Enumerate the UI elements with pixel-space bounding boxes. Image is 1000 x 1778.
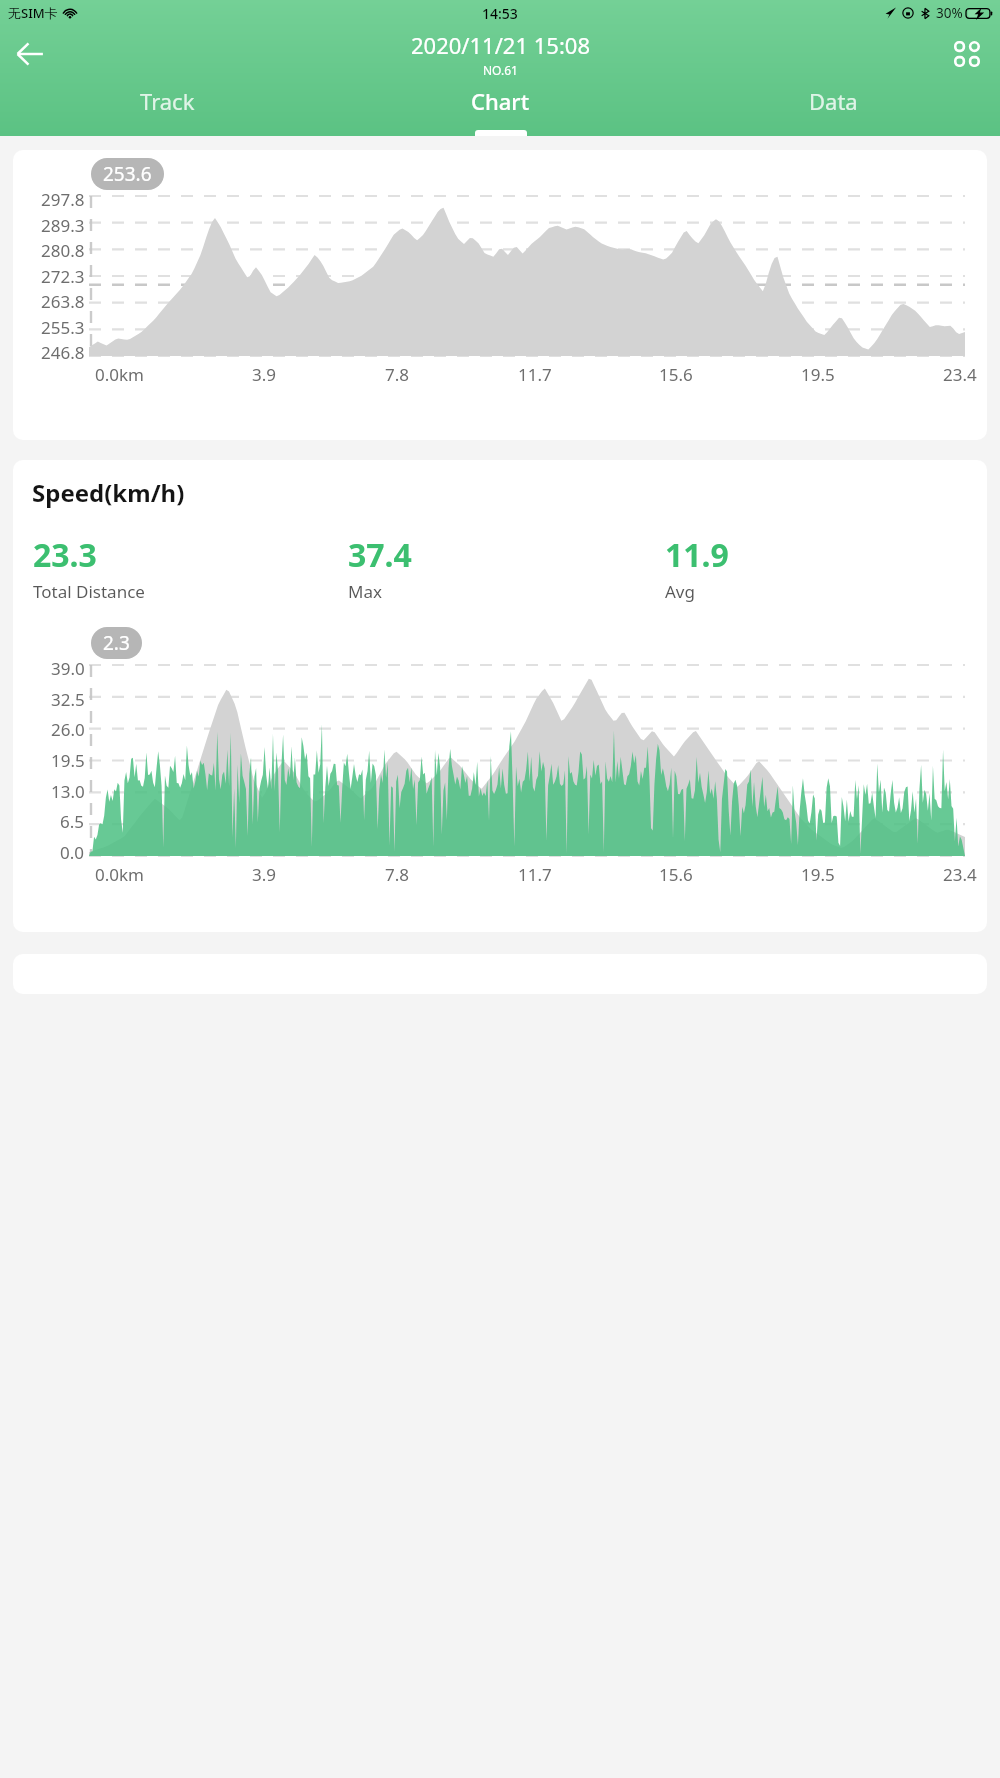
staticText: 289.3 — [41, 214, 85, 237]
staticText: 11.7 — [518, 363, 552, 386]
button[interactable]: Track — [0, 82, 334, 136]
staticText: Chart — [471, 86, 530, 116]
staticText: 11.9 — [665, 533, 729, 577]
staticText: 0.0 — [60, 841, 85, 864]
staticText: 0.0km — [95, 863, 144, 886]
button[interactable]: Grid view — [946, 33, 988, 75]
staticText: 7.8 — [385, 363, 410, 386]
staticText: Total Distance — [33, 580, 145, 603]
staticText: Track — [140, 86, 195, 116]
button[interactable]: Back — [8, 32, 52, 76]
staticText: Max — [348, 580, 382, 603]
staticText: 280.8 — [41, 239, 85, 262]
staticText: 37.4 — [348, 533, 412, 577]
staticText: 23.3 — [33, 533, 97, 577]
staticText: 3.9 — [252, 363, 277, 386]
staticText: 0.0km — [95, 363, 144, 386]
staticText: 7.8 — [385, 863, 410, 886]
staticText: 13.0 — [51, 780, 85, 803]
staticText: 19.5 — [801, 863, 835, 886]
staticText: 6.5 — [60, 810, 85, 833]
staticText: 14:53 — [482, 4, 518, 23]
staticText: 32.5 — [51, 688, 85, 711]
staticText: 253.6 — [103, 161, 152, 187]
button[interactable]: Data — [667, 82, 1000, 136]
staticText: 246.8 — [41, 341, 85, 364]
staticText: 39.0 — [51, 657, 85, 680]
staticText: 272.3 — [41, 265, 85, 288]
staticText: 19.5 — [801, 363, 835, 386]
staticText: 26.0 — [51, 718, 85, 741]
staticText: 23.4 — [943, 363, 977, 386]
staticText: 263.8 — [41, 290, 85, 313]
staticText: 2020/11/21 15:08 — [411, 30, 590, 60]
staticText: 2.3 — [103, 630, 130, 656]
staticText: 297.8 — [41, 188, 85, 211]
staticText: 255.3 — [41, 316, 85, 339]
staticText: 23.4 — [943, 863, 977, 886]
staticText: Speed(km/h) — [32, 476, 185, 509]
staticText: 无SIM卡 — [8, 4, 58, 22]
staticText: 15.6 — [659, 863, 693, 886]
staticText: NO.61 — [483, 62, 518, 78]
staticText: 15.6 — [659, 363, 693, 386]
staticText: Avg — [665, 580, 695, 603]
staticText: 11.7 — [518, 863, 552, 886]
staticText: 3.9 — [252, 863, 277, 886]
button[interactable]: Chart — [334, 82, 667, 136]
staticText: Data — [809, 86, 858, 116]
staticText: 19.5 — [51, 749, 85, 772]
staticText: 30% — [936, 4, 963, 22]
